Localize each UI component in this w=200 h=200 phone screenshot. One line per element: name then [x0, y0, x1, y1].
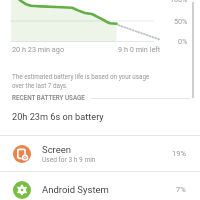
button[interactable]: Android System: [0, 172, 200, 200]
staticText: Screen: [42, 144, 72, 155]
staticText: 0%: [178, 37, 188, 45]
staticText: 100%: [170, 0, 188, 3]
staticText: 9 h 0 min left: [118, 45, 161, 54]
staticText: 20h 23m 6s on battery: [12, 111, 104, 122]
staticText: RECENT BATTERY USAGE: [12, 94, 85, 101]
staticText: The estimated battery life is based on y…: [12, 73, 150, 89]
staticText: 19%: [172, 149, 186, 158]
staticText: 50%: [174, 17, 188, 25]
staticText: Android System: [42, 184, 109, 195]
staticText: Used for 3 h 9 min: [42, 156, 96, 164]
button[interactable]: Screen: [0, 136, 200, 171]
staticText: 20 h 23 min ago: [12, 45, 65, 54]
staticText: 7%: [176, 185, 186, 194]
